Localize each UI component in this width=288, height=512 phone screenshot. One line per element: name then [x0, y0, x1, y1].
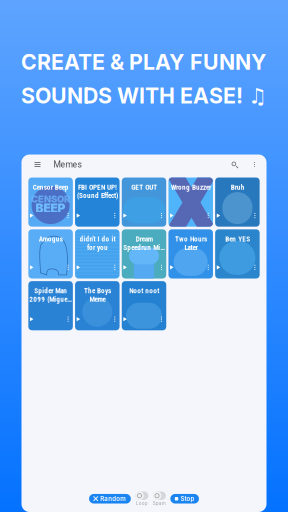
- staticText: Censor Beep: [33, 183, 69, 191]
- button[interactable]: Noot noot: [122, 281, 166, 330]
- button[interactable]: Dream Speedrun Mi…: [122, 229, 166, 278]
- staticText: Spam: [153, 500, 166, 506]
- staticText: Ben YES: [225, 235, 250, 243]
- button[interactable]: Random: [89, 494, 131, 504]
- button[interactable]: Ben YES: [215, 229, 260, 278]
- staticText: CREATE & PLAY FUNNY: [21, 49, 267, 75]
- staticText: Memes: [53, 159, 81, 169]
- staticText: Noot noot: [129, 287, 159, 295]
- button[interactable]: Wrong Buzzer: [168, 177, 213, 227]
- staticText: Amogus: [39, 235, 63, 243]
- button[interactable]: The Boys Meme: [75, 281, 119, 330]
- staticText: Bruh: [230, 183, 244, 191]
- staticText: CENSOR: [31, 193, 70, 205]
- staticText: The Boys Meme: [84, 287, 111, 303]
- button[interactable]: Bruh: [215, 177, 260, 227]
- button[interactable]: didn't I do it for you: [75, 229, 119, 278]
- button[interactable]: Stop: [170, 494, 199, 504]
- staticText: Dream Speedrun Mi…: [123, 235, 165, 252]
- staticText: Two Hours Later: [175, 235, 207, 252]
- button[interactable]: GET OUT: [122, 177, 166, 227]
- staticText: Wrong Buzzer: [171, 183, 211, 191]
- staticText: FBI OPEN UP! (Sound Effect): [77, 183, 118, 200]
- staticText: didn't I do it for you: [79, 235, 115, 252]
- staticText: GET OUT: [131, 183, 157, 191]
- button[interactable]: Spam: [153, 491, 166, 506]
- staticText: Stop: [180, 495, 194, 502]
- staticText: Loop: [136, 500, 148, 506]
- button[interactable]: FBI OPEN UP! (Sound Effect): [75, 177, 119, 227]
- staticText: Spider Man 2099 (Migue…: [29, 287, 72, 303]
- button[interactable]: BEEP: [28, 177, 73, 227]
- button[interactable]: Loop: [135, 491, 148, 506]
- staticText: BEEP: [36, 201, 66, 215]
- staticText: Random: [100, 495, 126, 502]
- button[interactable]: More options: [249, 155, 260, 173]
- button[interactable]: Menu: [31, 155, 44, 173]
- staticText: SOUNDS WITH EASE! ♫: [21, 83, 267, 109]
- button[interactable]: Spider Man 2099 (Migue…: [28, 281, 73, 330]
- button[interactable]: Amogus: [28, 229, 73, 278]
- button[interactable]: Search: [229, 155, 240, 173]
- button[interactable]: Two Hours Later: [168, 229, 213, 278]
